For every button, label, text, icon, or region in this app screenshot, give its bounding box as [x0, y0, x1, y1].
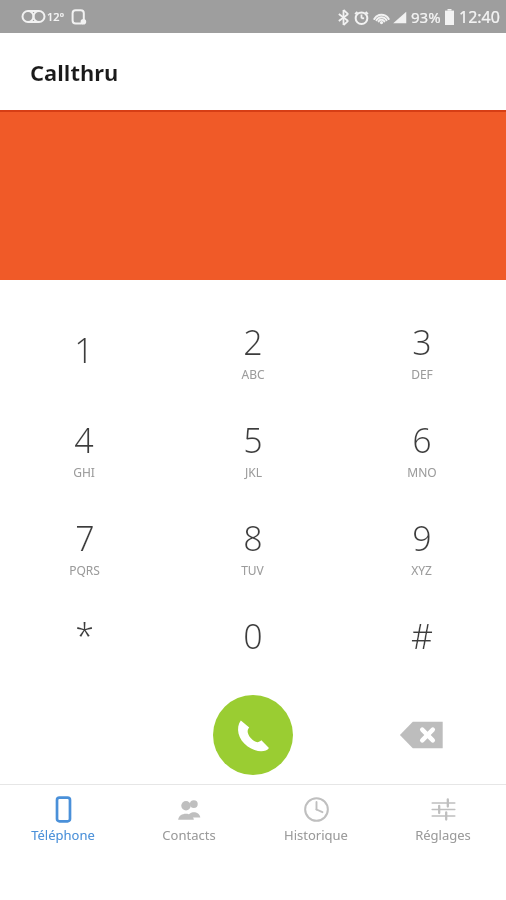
staticText: 5: [243, 417, 263, 463]
staticText: Contacts: [162, 826, 216, 844]
button[interactable]: 9: [337, 497, 506, 595]
button[interactable]: 4: [0, 399, 168, 497]
staticText: 8: [243, 515, 263, 561]
staticText: Historique: [284, 826, 348, 844]
staticText: ABC: [241, 366, 265, 382]
staticText: Callthru: [30, 57, 119, 87]
button[interactable]: Contacts: [126, 785, 252, 854]
staticText: 0: [243, 613, 263, 659]
staticText: DEF: [411, 366, 433, 382]
button[interactable]: 3: [337, 301, 506, 399]
button[interactable]: 5: [168, 399, 337, 497]
staticText: GHI: [73, 464, 95, 480]
button[interactable]: 2: [168, 301, 337, 399]
button[interactable]: 8: [168, 497, 337, 595]
staticText: 2: [243, 319, 263, 365]
button[interactable]: 0: [168, 595, 337, 677]
button[interactable]: 1: [0, 301, 168, 399]
staticText: Téléphone: [31, 826, 95, 844]
button[interactable]: Téléphone: [0, 785, 126, 854]
button[interactable]: Call: [213, 695, 293, 775]
staticText: TUV: [241, 562, 264, 578]
staticText: 3: [412, 319, 432, 365]
staticText: Réglages: [415, 826, 471, 844]
button[interactable]: Historique: [252, 785, 379, 854]
staticText: 12:40: [459, 6, 500, 28]
staticText: 6: [412, 417, 432, 463]
button[interactable]: 7: [0, 497, 168, 595]
button[interactable]: Réglages: [379, 785, 506, 854]
staticText: 4: [74, 417, 94, 463]
button[interactable]: #: [337, 595, 506, 677]
staticText: XYZ: [411, 562, 432, 578]
staticText: 7: [75, 515, 95, 561]
staticText: JKL: [245, 464, 262, 480]
staticText: 9: [412, 515, 432, 561]
staticText: MNO: [407, 464, 437, 480]
staticText: *: [75, 613, 94, 659]
staticText: 93%: [411, 7, 441, 27]
staticText: 1: [74, 327, 94, 373]
button[interactable]: Backspace: [388, 701, 456, 769]
button[interactable]: *: [0, 595, 168, 677]
staticText: 12°: [47, 9, 65, 24]
button[interactable]: 6: [337, 399, 506, 497]
staticText: #: [411, 613, 433, 659]
staticText: PQRS: [69, 562, 100, 578]
